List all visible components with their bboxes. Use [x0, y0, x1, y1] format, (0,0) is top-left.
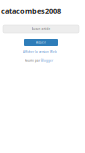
staticText: Blogger	[41, 59, 53, 63]
staticText: Aucun article	[31, 27, 50, 31]
staticText: Afficher la version Web	[23, 50, 57, 54]
button[interactable]: Blogger	[41, 59, 53, 63]
button[interactable]: Afficher la version Web	[23, 50, 57, 54]
staticText: catacombes2008	[1, 6, 61, 16]
staticText: Fourni par	[25, 59, 40, 63]
button[interactable]: Accueil	[24, 39, 58, 46]
staticText: Accueil	[36, 41, 46, 44]
